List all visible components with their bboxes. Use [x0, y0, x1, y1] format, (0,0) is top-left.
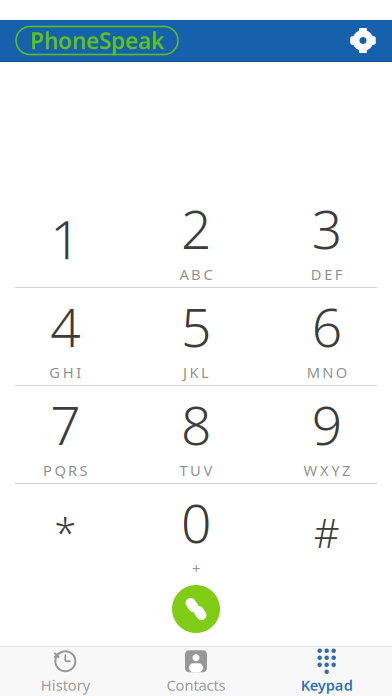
staticText: ABC [179, 265, 212, 284]
staticText: 8 [181, 389, 211, 460]
staticText: Keypad [301, 675, 353, 695]
button[interactable]: 9 [261, 386, 392, 483]
staticText: 3 [312, 193, 342, 264]
button[interactable]: 4 [0, 288, 131, 385]
staticText: 9 [312, 389, 342, 460]
button[interactable]: 1 [0, 190, 131, 287]
button[interactable]: 3 [261, 190, 392, 287]
staticText: 100% [308, 0, 353, 21]
staticText: GHI [49, 363, 81, 382]
staticText: 1 [50, 203, 80, 274]
button[interactable]: # [261, 484, 392, 581]
staticText: History [41, 675, 90, 695]
staticText: WXYZ [303, 461, 350, 480]
button[interactable]: Keypad [261, 647, 392, 696]
staticText: 2 [181, 193, 211, 264]
button[interactable]: 8 [131, 386, 261, 483]
staticText: 5 [181, 291, 211, 362]
button[interactable]: History [0, 647, 131, 696]
staticText: 4 [50, 291, 80, 362]
button[interactable]: 7 [0, 386, 131, 483]
staticText: Contacts [166, 675, 225, 695]
button[interactable]: 6 [261, 288, 392, 385]
button[interactable]: 5 [131, 288, 261, 385]
staticText: MNO [307, 363, 347, 382]
staticText: 7 [50, 389, 80, 460]
button[interactable]: Call [168, 581, 224, 637]
staticText: No SIM [10, 0, 71, 21]
staticText: 19:57 [169, 0, 214, 21]
staticText: 0 [181, 487, 211, 558]
button[interactable]: Contacts [131, 647, 261, 696]
button[interactable]: 0 [131, 484, 261, 581]
staticText: # [314, 506, 340, 559]
staticText: JKL [183, 363, 209, 382]
staticText: TUV [179, 461, 212, 480]
staticText: PhoneSpeak [30, 25, 164, 55]
staticText: PQRS [43, 461, 88, 480]
staticText: DEF [311, 265, 343, 284]
staticText: * [54, 506, 76, 559]
staticText: + [192, 559, 200, 578]
button[interactable]: 2 [131, 190, 261, 287]
staticText: 6 [312, 291, 342, 362]
button[interactable]: * [0, 484, 131, 581]
button[interactable]: PhoneSpeak [16, 26, 178, 54]
button[interactable]: Settings [350, 27, 376, 53]
